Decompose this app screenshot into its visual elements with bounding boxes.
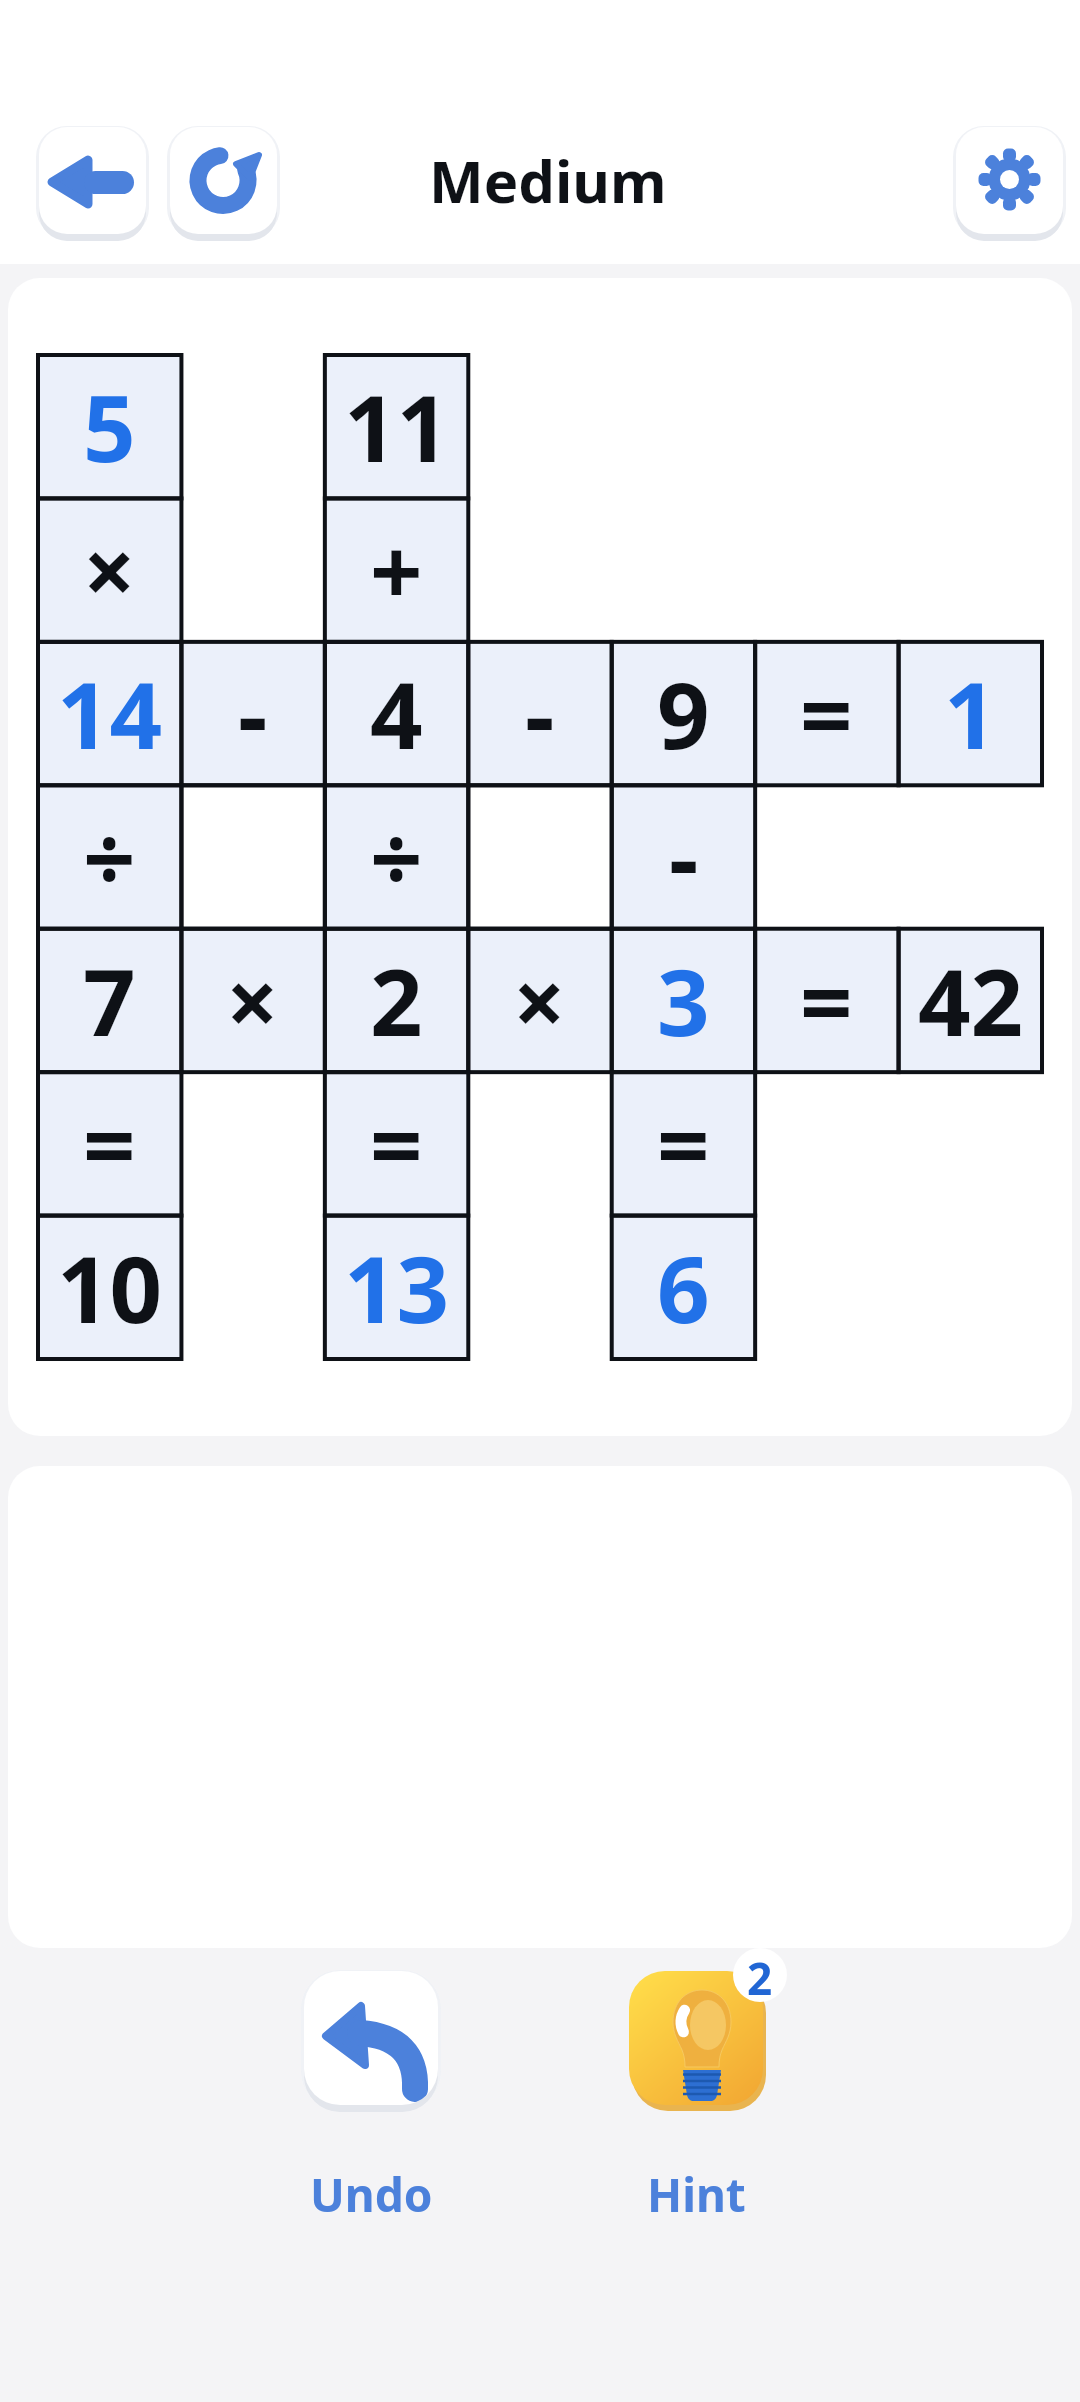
staticText: -	[238, 651, 268, 776]
staticText: 10	[57, 1225, 163, 1350]
staticText: =	[83, 1081, 136, 1206]
staticText: =	[800, 938, 853, 1063]
staticText: 2	[747, 1948, 773, 2002]
staticText: ×	[83, 507, 136, 632]
button[interactable]	[956, 127, 1063, 234]
staticText: ×	[226, 938, 279, 1063]
staticText: 3	[657, 938, 710, 1063]
staticText: =	[657, 1081, 710, 1206]
button[interactable]	[170, 127, 277, 234]
staticText: ÷	[83, 794, 136, 919]
staticText: 42	[918, 938, 1024, 1063]
staticText: 11	[344, 364, 450, 489]
staticText: 14	[57, 651, 163, 776]
staticText: -	[525, 651, 555, 776]
staticText: 4	[370, 651, 423, 776]
staticText: +	[370, 507, 423, 632]
staticText: =	[370, 1081, 423, 1206]
staticText: Undo	[310, 2163, 433, 2217]
staticText: 2	[370, 938, 423, 1063]
staticText: 13	[344, 1225, 450, 1350]
staticText: 9	[657, 651, 710, 776]
button[interactable]	[304, 1971, 438, 2105]
staticText: 7	[83, 938, 136, 1063]
button[interactable]	[39, 127, 146, 234]
staticText: =	[800, 651, 853, 776]
staticText: -	[669, 794, 699, 919]
button[interactable]	[629, 1971, 763, 2105]
staticText: Hint	[647, 2163, 746, 2217]
staticText: 1	[944, 651, 997, 776]
staticText: ×	[513, 938, 566, 1063]
staticText: 5	[83, 364, 136, 489]
staticText: Medium	[429, 141, 667, 220]
staticText: 6	[657, 1225, 710, 1350]
staticText: ÷	[370, 794, 423, 919]
